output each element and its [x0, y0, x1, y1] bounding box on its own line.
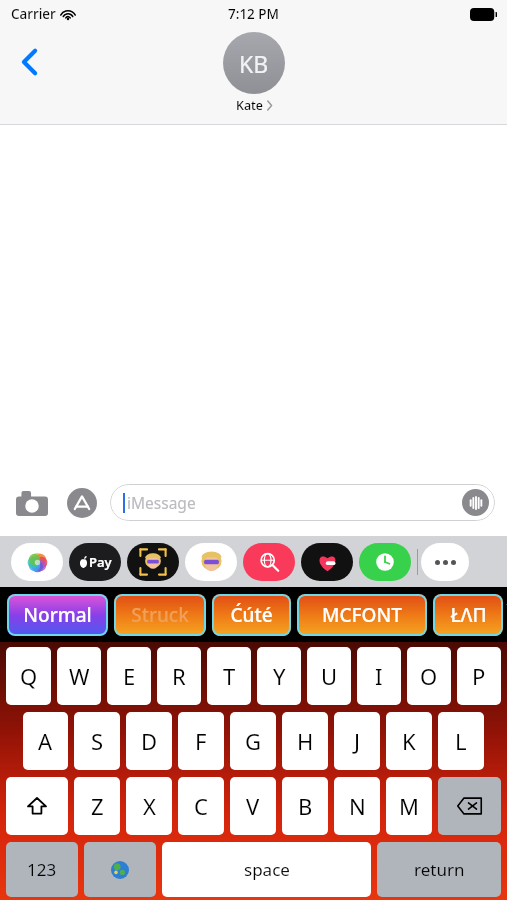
button[interactable]: H [282, 712, 328, 770]
staticText: A [38, 726, 53, 756]
button[interactable]: O [407, 647, 451, 705]
button[interactable]: Camera [12, 483, 52, 523]
staticText: Struck [131, 602, 189, 628]
button[interactable]: I [357, 647, 401, 705]
staticText: V [246, 791, 260, 821]
staticText: M [399, 791, 419, 821]
button[interactable]: P [457, 647, 501, 705]
button[interactable]: Digital Touch [301, 543, 353, 581]
button[interactable]: MCFONT [297, 594, 427, 636]
button[interactable]: Y [257, 647, 301, 705]
button[interactable]: T [207, 647, 251, 705]
staticText: return [414, 858, 465, 881]
button[interactable]: M [386, 777, 432, 835]
staticText: Z [91, 791, 104, 821]
button[interactable]: Apple Pay [69, 543, 121, 581]
staticText: F [195, 726, 207, 756]
button[interactable]: D [126, 712, 172, 770]
staticText: O [420, 661, 438, 691]
button[interactable]: Q [6, 647, 51, 705]
button[interactable]: Struck [114, 594, 206, 636]
staticText: Normal [23, 602, 92, 628]
staticText: C [194, 791, 208, 821]
button[interactable]: J [334, 712, 380, 770]
button[interactable]: U [307, 647, 351, 705]
button[interactable]: More apps [421, 543, 469, 581]
button[interactable]: G [230, 712, 276, 770]
button[interactable]: X [126, 777, 172, 835]
staticText: B [298, 791, 313, 821]
button[interactable]: Memoji Stickers [127, 543, 179, 581]
staticText: N [349, 791, 366, 821]
button[interactable]: Back [10, 42, 50, 82]
staticText: Kate [236, 97, 264, 114]
button[interactable]: C [178, 777, 224, 835]
staticText: E [123, 661, 136, 691]
staticText: G [245, 726, 262, 756]
button[interactable]: Memoji [185, 543, 237, 581]
staticText: 7:12 PM [228, 5, 279, 23]
staticText: Ćúté [230, 602, 273, 628]
button[interactable]: S [74, 712, 120, 770]
button[interactable]: 123 [6, 842, 78, 897]
staticText: J [354, 726, 361, 756]
button[interactable]: N [334, 777, 380, 835]
staticText: iMessage [127, 492, 196, 513]
button[interactable]: Delete [438, 777, 501, 835]
staticText: 123 [27, 858, 57, 881]
staticText: X [143, 791, 156, 821]
button[interactable]: V [230, 777, 276, 835]
staticText: H [297, 726, 314, 756]
staticText: U [321, 661, 338, 691]
button[interactable]: F [178, 712, 224, 770]
button[interactable]: space [162, 842, 371, 897]
staticText: Y [273, 661, 286, 691]
staticText: Pay [89, 553, 112, 571]
staticText: L [455, 726, 467, 756]
staticText: Q [20, 661, 38, 691]
button[interactable]: Font settings [506, 587, 507, 642]
button[interactable]: A [23, 712, 68, 770]
staticText: MCFONT [322, 602, 402, 628]
staticText: S [91, 726, 104, 756]
staticText: ŁΛП [450, 602, 487, 628]
other: Audio message [462, 489, 489, 516]
button[interactable]: KB [223, 32, 285, 114]
staticText: Carrier [11, 5, 56, 23]
button[interactable]: E [107, 647, 151, 705]
staticText: T [223, 661, 236, 691]
button[interactable]: Recents [359, 543, 411, 581]
staticText: I [375, 661, 383, 691]
button[interactable]: Ćúté [212, 594, 291, 636]
button[interactable]: iMessage [110, 484, 495, 521]
staticText: R [172, 661, 186, 691]
button[interactable]: W [57, 647, 101, 705]
button[interactable]: Image Search [243, 543, 295, 581]
button[interactable]: B [282, 777, 328, 835]
staticText: D [141, 726, 158, 756]
button[interactable]: Z [74, 777, 120, 835]
button[interactable]: Shift [6, 777, 68, 835]
button[interactable]: K [386, 712, 432, 770]
button[interactable]: return [377, 842, 501, 897]
staticText: W [69, 661, 90, 691]
staticText: P [472, 661, 486, 691]
staticText: space [244, 858, 290, 881]
button[interactable]: Switch keyboard [84, 842, 156, 897]
button[interactable]: L [438, 712, 484, 770]
staticText: K [402, 726, 416, 756]
button[interactable]: ŁΛП [433, 594, 503, 636]
button[interactable]: R [157, 647, 201, 705]
button[interactable]: Photos [11, 543, 63, 581]
button[interactable]: Apps [64, 485, 100, 521]
staticText: KB [239, 48, 269, 79]
button[interactable]: Normal [7, 594, 108, 636]
